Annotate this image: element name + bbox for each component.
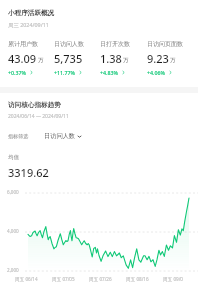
button[interactable]: 日访问页面数 [147, 40, 194, 76]
staticText: 2,000 [7, 267, 19, 273]
staticText: 日访问页面数 [147, 40, 183, 48]
staticText: 日打开次数 [100, 40, 130, 48]
staticText: 万 [123, 57, 129, 64]
staticText: 6,000 [7, 189, 19, 195]
button[interactable]: 日访问人数 [54, 40, 100, 76]
button[interactable]: 日访问人数 [44, 132, 82, 140]
staticText: 指标筛选 [8, 133, 29, 139]
staticText: 万 [170, 57, 176, 64]
staticText: 周五 08/16 [126, 276, 163, 282]
staticText: 访问核心指标趋势 [8, 101, 61, 109]
staticText: 2024/06/14 — 2024/09/11 [8, 113, 69, 120]
staticText: 小程序活跃概况 [8, 9, 55, 17]
staticText: +11.77% [54, 69, 76, 76]
button[interactable]: 日打开次数 [100, 40, 147, 76]
button[interactable]: 累计用户数 [8, 40, 54, 76]
staticText: 累计用户数 [8, 40, 38, 48]
staticText: 周五 07/26 [89, 276, 126, 282]
staticText: 均值 [8, 154, 19, 161]
staticText: 周五 07/05 [52, 276, 89, 282]
staticText: +4.83% [100, 69, 119, 76]
staticText: 周三 2024/09/11 [8, 21, 49, 28]
staticText: 4,000 [7, 228, 19, 234]
staticText: +4.06% [147, 69, 166, 76]
staticText: 日访问人数 [44, 132, 75, 140]
staticText: +0.37% [8, 69, 27, 76]
staticText: 9.23 [147, 51, 169, 66]
staticText: 周五 06/14 [15, 276, 52, 282]
staticText: 周五 09/0 [163, 276, 198, 282]
staticText: 万 [38, 57, 44, 64]
staticText: 3319.62 [8, 165, 49, 180]
staticText: 5,735 [54, 51, 83, 66]
staticText: 43.09 [8, 51, 37, 66]
staticText: 1.38 [100, 51, 122, 66]
staticText: 日访问人数 [54, 40, 84, 48]
